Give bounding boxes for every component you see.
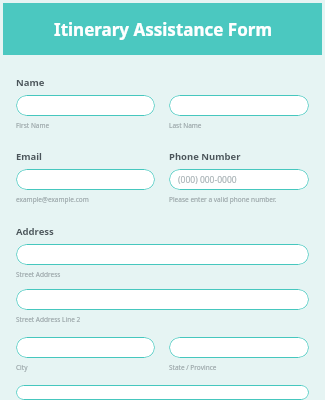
staticText: Please enter a valid phone number. [169,195,277,204]
staticText: Street Address Line 2 [16,315,81,324]
button[interactable] [16,337,155,358]
staticText: Phone Number [169,150,241,163]
button[interactable]: (000) 000-0000 [169,169,309,190]
button[interactable] [16,244,309,265]
staticText: example@example.com [16,195,89,204]
button[interactable] [16,385,309,400]
button[interactable] [16,169,155,190]
staticText: Email [16,150,42,163]
button[interactable] [16,289,309,310]
staticText: State / Province [169,363,217,372]
button[interactable] [16,95,155,116]
staticText: First Name [16,121,50,130]
staticText: Address [16,225,54,238]
staticText: Street Address [16,270,61,279]
staticText: Itinerary Assistance Form [54,18,272,41]
staticText: (000) 000-0000 [178,174,237,186]
button[interactable] [169,95,309,116]
staticText: Name [16,76,45,89]
staticText: Last Name [169,121,202,130]
button[interactable] [169,337,309,358]
staticText: City [16,363,28,372]
